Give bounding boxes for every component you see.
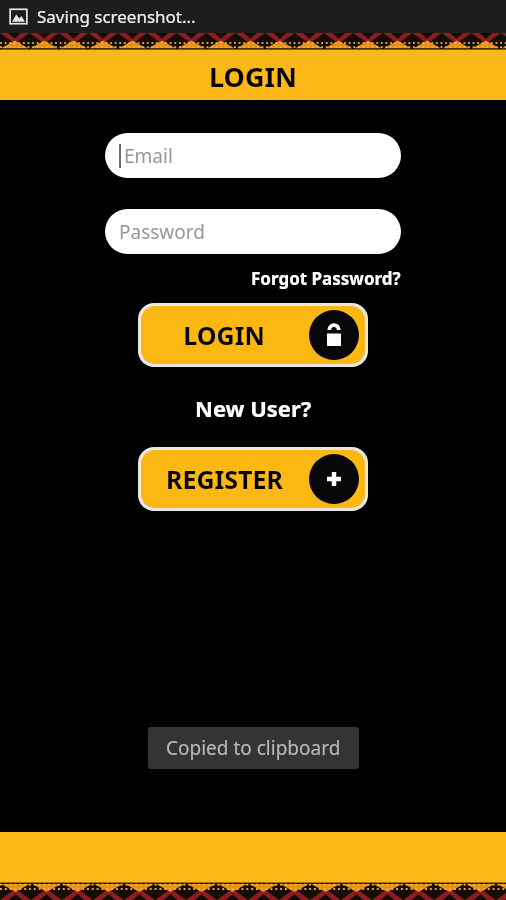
staticText: Copied to clipboard [166,735,341,761]
staticText: New User? [195,393,312,423]
staticText: LOGIN [209,58,297,95]
button[interactable]: Email [105,133,401,178]
button[interactable]: Password [105,209,401,254]
staticText: Email [124,143,173,169]
staticText: Saving screenshot... [37,5,196,28]
staticText: REGISTER [166,462,283,496]
staticText: Forgot Password? [251,267,401,290]
staticText: Password [119,219,205,245]
staticText: LOGIN [183,318,265,352]
button[interactable]: Login [141,306,365,364]
button[interactable]: Forgot Password? [105,267,401,290]
button[interactable]: Register [141,450,365,508]
